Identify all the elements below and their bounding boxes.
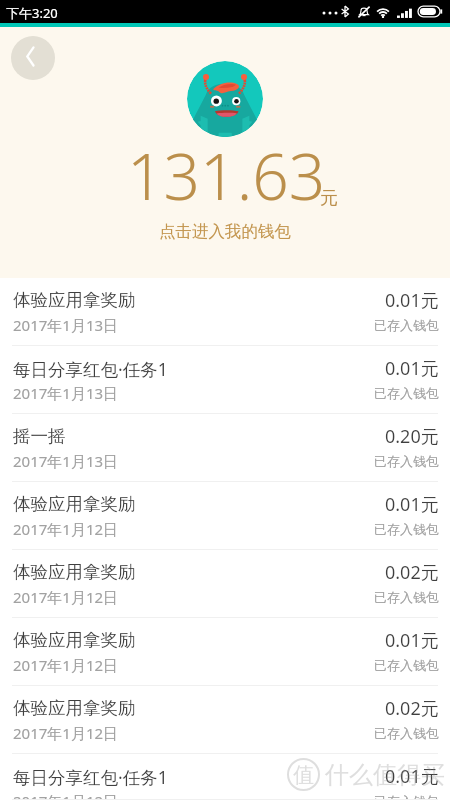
- button[interactable]: 体验应用拿奖励: [0, 278, 450, 346]
- staticText: 0.01元: [385, 628, 439, 653]
- staticText: 已存入钱包: [374, 657, 439, 673]
- staticText: 已存入钱包: [374, 385, 439, 401]
- staticText: 0.01元: [385, 288, 439, 313]
- staticText: 体验应用拿奖励: [13, 493, 136, 515]
- staticText: 2017年1月12日: [13, 791, 119, 800]
- button[interactable]: 体验应用拿奖励: [0, 618, 450, 686]
- button[interactable]: 每日分享红包·任务1: [0, 754, 450, 800]
- button[interactable]: 点击进入我的钱包: [159, 221, 291, 242]
- staticText: 体验应用拿奖励: [13, 697, 136, 719]
- staticText: 0.01元: [385, 356, 439, 381]
- staticText: 131.63: [127, 132, 326, 219]
- staticText: 0.01元: [385, 764, 439, 789]
- staticText: 每日分享红包·任务1: [13, 357, 168, 381]
- staticText: 0.01元: [385, 492, 439, 517]
- button[interactable]: 体验应用拿奖励: [0, 686, 450, 754]
- staticText: 已存入钱包: [374, 521, 439, 537]
- staticText: 已存入钱包: [374, 725, 439, 741]
- button[interactable]: 每日分享红包·任务1: [0, 346, 450, 414]
- staticText: 2017年1月12日: [13, 519, 119, 539]
- staticText: 已存入钱包: [374, 453, 439, 469]
- staticText: 体验应用拿奖励: [13, 289, 136, 311]
- staticText: 下午3:20: [6, 4, 58, 22]
- staticText: 值: [293, 762, 314, 788]
- button[interactable]: 摇一摇: [0, 414, 450, 482]
- staticText: 2017年1月13日: [13, 451, 119, 471]
- staticText: 2017年1月12日: [13, 723, 119, 743]
- staticText: 已存入钱包: [374, 589, 439, 605]
- staticText: 元: [320, 187, 338, 210]
- staticText: 已存入钱包: [374, 793, 439, 800]
- staticText: 体验应用拿奖励: [13, 561, 136, 583]
- staticText: 0.02元: [385, 560, 439, 585]
- staticText: 2017年1月12日: [13, 655, 119, 675]
- staticText: 体验应用拿奖励: [13, 629, 136, 651]
- staticText: 什么值得买: [325, 760, 445, 790]
- staticText: 2017年1月12日: [13, 587, 119, 607]
- staticText: 0.20元: [385, 424, 439, 449]
- staticText: 2017年1月13日: [13, 315, 119, 335]
- button[interactable]: Back: [11, 36, 55, 80]
- staticText: 已存入钱包: [374, 317, 439, 333]
- staticText: 摇一摇: [13, 425, 66, 447]
- staticText: 0.02元: [385, 696, 439, 721]
- staticText: 每日分享红包·任务1: [13, 765, 168, 789]
- staticText: 2017年1月13日: [13, 383, 119, 403]
- button[interactable]: 体验应用拿奖励: [0, 482, 450, 550]
- button[interactable]: 体验应用拿奖励: [0, 550, 450, 618]
